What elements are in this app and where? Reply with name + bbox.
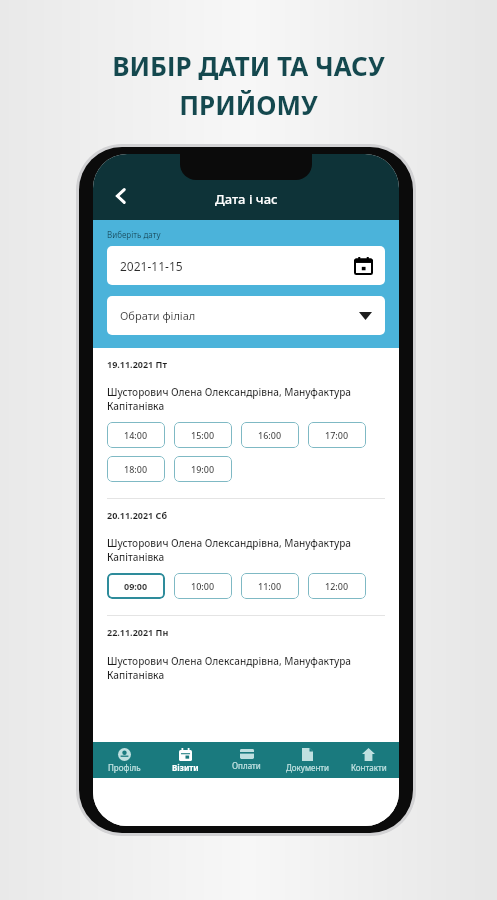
- button[interactable]: 09:00: [107, 573, 165, 599]
- staticText: Контакти: [351, 762, 387, 773]
- staticText: Дата і час: [215, 190, 278, 208]
- staticText: ПРИЙОМУ: [179, 87, 318, 122]
- button[interactable]: 17:00: [308, 422, 366, 448]
- staticText: 22.11.2021 Пн: [107, 626, 169, 638]
- staticText: 18:00: [124, 463, 148, 475]
- button[interactable]: 11:00: [241, 573, 299, 599]
- button[interactable]: 2021-11-15: [107, 246, 385, 285]
- staticText: 20.11.2021 Сб: [107, 509, 168, 521]
- staticText: 16:00: [258, 429, 282, 441]
- staticText: Шусторович Олена Олександрівна, Мануфакт…: [107, 385, 352, 413]
- button[interactable]: Обрати філіал: [107, 296, 385, 335]
- staticText: Оплати: [232, 760, 261, 771]
- button[interactable]: Оплати: [216, 742, 277, 778]
- staticText: Шусторович Олена Олександрівна, Мануфакт…: [107, 654, 352, 682]
- staticText: 19.11.2021 Пт: [107, 358, 167, 370]
- button[interactable]: 19:00: [174, 456, 232, 482]
- button[interactable]: Документи: [277, 742, 338, 778]
- staticText: 09:00: [124, 580, 148, 592]
- staticText: Профіль: [108, 762, 141, 773]
- button[interactable]: Профіль: [93, 742, 155, 778]
- staticText: 19:00: [191, 463, 215, 475]
- staticText: 17:00: [325, 429, 349, 441]
- staticText: 12:00: [325, 580, 349, 592]
- button[interactable]: 18:00: [107, 456, 165, 482]
- staticText: Виберіть дату: [107, 229, 161, 240]
- staticText: Документи: [286, 762, 330, 773]
- staticText: 15:00: [191, 429, 215, 441]
- staticText: Шусторович Олена Олександрівна, Мануфакт…: [107, 536, 352, 564]
- staticText: 14:00: [124, 429, 148, 441]
- staticText: Візити: [172, 762, 199, 773]
- button[interactable]: 15:00: [174, 422, 232, 448]
- staticText: 10:00: [191, 580, 215, 592]
- button[interactable]: 16:00: [241, 422, 299, 448]
- staticText: Обрати філіал: [120, 308, 359, 323]
- staticText: 11:00: [258, 580, 282, 592]
- button[interactable]: 14:00: [107, 422, 165, 448]
- button[interactable]: 10:00: [174, 573, 232, 599]
- button[interactable]: Візити: [155, 742, 216, 778]
- button[interactable]: Back: [101, 176, 141, 216]
- staticText: ВИБІР ДАТИ ТА ЧАСУ: [112, 48, 385, 83]
- button[interactable]: Контакти: [338, 742, 399, 778]
- button[interactable]: 12:00: [308, 573, 366, 599]
- staticText: 2021-11-15: [120, 258, 355, 274]
